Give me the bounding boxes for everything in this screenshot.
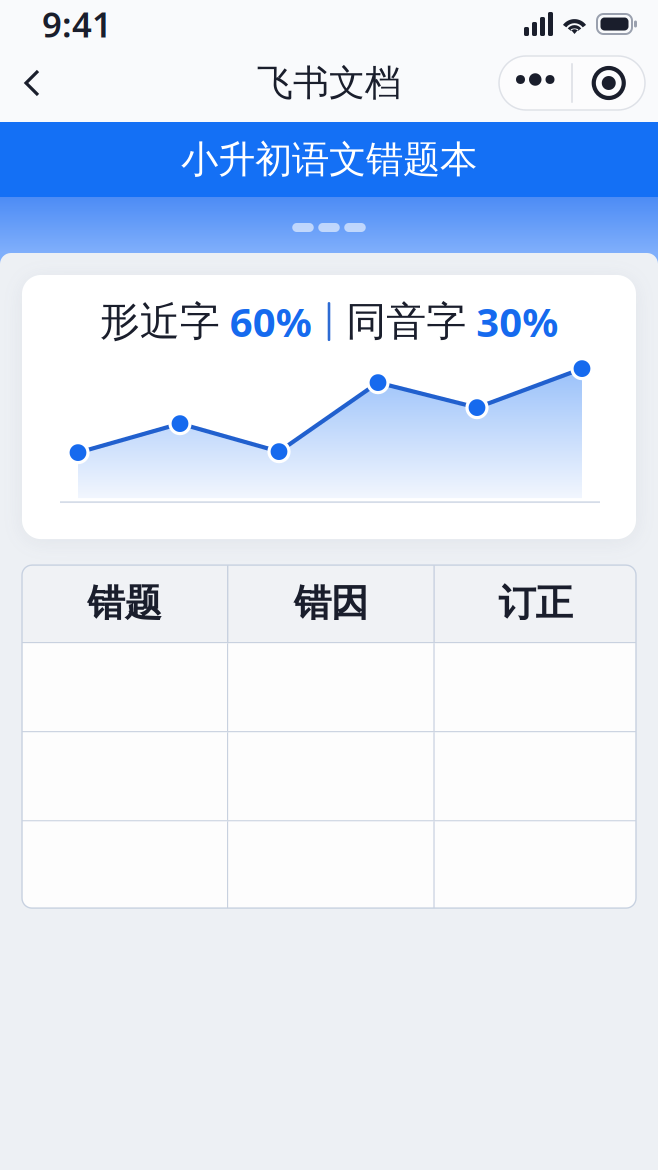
staticText: 60% xyxy=(220,295,312,348)
staticText: 飞书文档 xyxy=(257,61,401,105)
staticText: 小升初语文错题本 xyxy=(181,137,477,182)
staticText: 9:41 xyxy=(42,1,112,47)
staticText: 错因 xyxy=(294,580,368,626)
staticText: 错题 xyxy=(87,580,161,626)
staticText: 同音字 xyxy=(346,297,466,346)
staticText: 订正 xyxy=(498,580,572,626)
button[interactable]: Back xyxy=(0,56,63,110)
staticText: 形近字 xyxy=(100,297,220,346)
button[interactable]: Record xyxy=(573,56,645,110)
button[interactable]: More options xyxy=(499,56,571,110)
staticText: 30% xyxy=(466,295,558,348)
